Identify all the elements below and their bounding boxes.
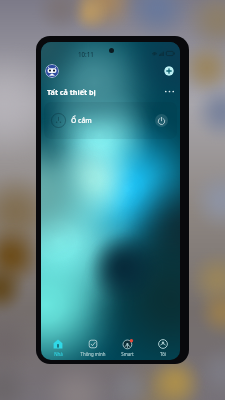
staticText: Tôi (160, 351, 166, 357)
staticText: Thông minh (80, 351, 106, 357)
staticText: 10:11 (78, 50, 94, 58)
button[interactable]: Nhà (41, 335, 75, 360)
button[interactable]: Assistant (45, 64, 59, 78)
button[interactable]: Tôi (145, 335, 180, 360)
button[interactable]: Ổ cắm (44, 102, 177, 139)
staticText: Nhà (54, 351, 63, 357)
button[interactable]: More options (164, 86, 175, 97)
button[interactable]: Thông minh (75, 335, 110, 360)
button[interactable]: Add device (164, 66, 174, 76)
staticText: Ổ cắm (71, 116, 92, 125)
button[interactable]: Smart (110, 335, 145, 360)
button[interactable]: Power toggle (155, 114, 168, 127)
staticText: Tất cả thiết bị (47, 87, 96, 97)
staticText: Smart (121, 351, 134, 357)
